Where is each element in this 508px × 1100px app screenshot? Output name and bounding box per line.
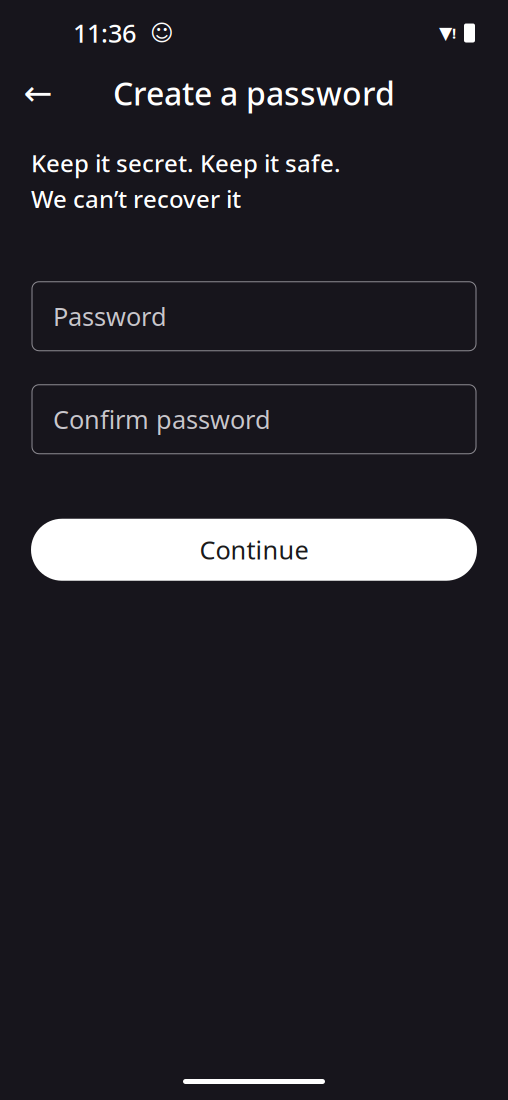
staticText: Password xyxy=(53,299,167,333)
staticText: ☺ xyxy=(136,20,174,46)
staticText: Confirm password xyxy=(53,402,271,436)
button[interactable]: Back xyxy=(14,69,62,117)
staticText: ! xyxy=(452,23,456,43)
staticText: Keep it secret. Keep it safe. xyxy=(31,147,341,179)
staticText: Continue xyxy=(199,533,308,566)
button[interactable]: Confirm password xyxy=(32,385,476,454)
staticText: ← xyxy=(23,73,52,113)
button[interactable]: Continue xyxy=(31,519,477,581)
button[interactable]: Password xyxy=(32,282,476,351)
staticText: ▼ xyxy=(439,23,452,43)
staticText: Create a password xyxy=(113,72,395,114)
staticText: 11:36 xyxy=(73,16,136,50)
staticText: We can’t recover it xyxy=(31,183,241,215)
